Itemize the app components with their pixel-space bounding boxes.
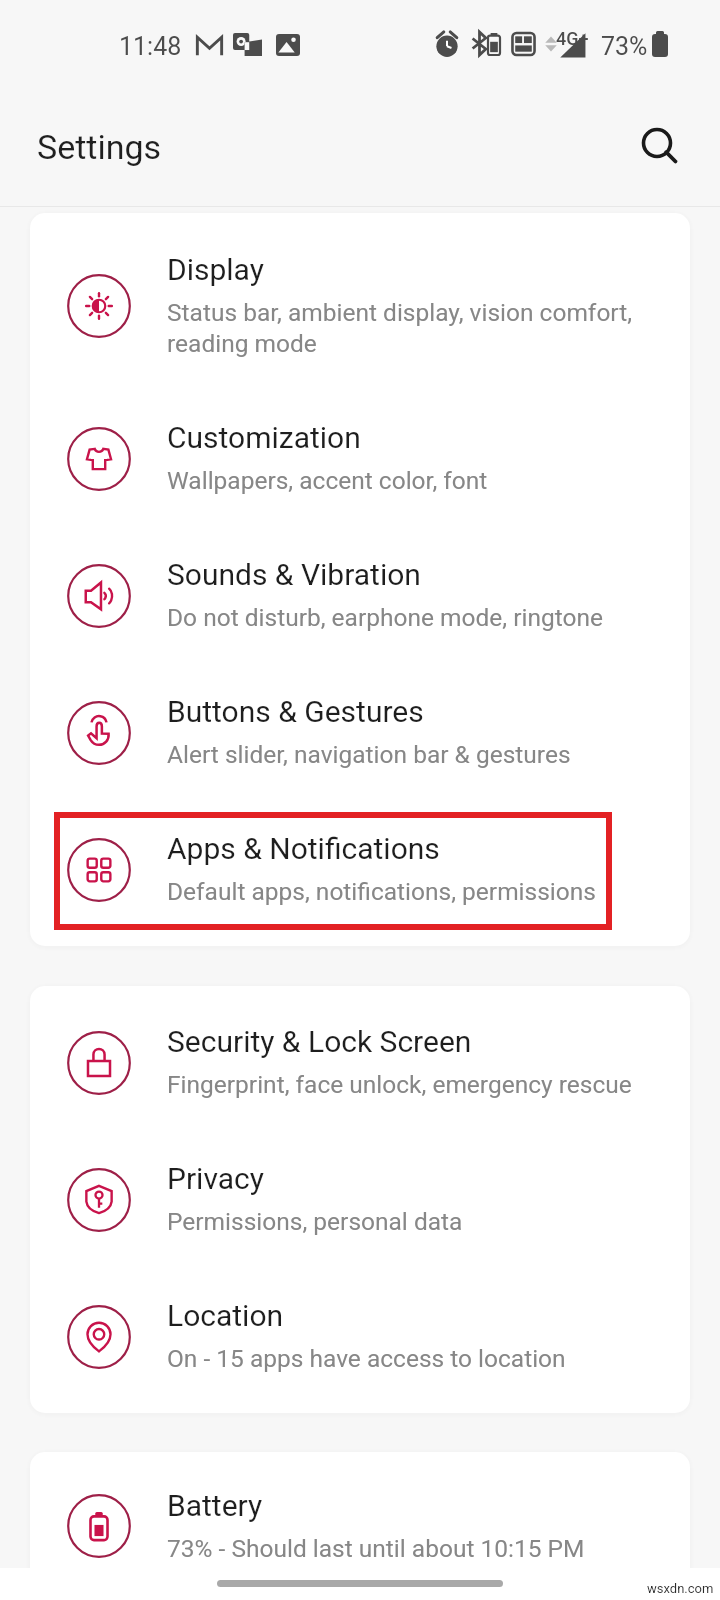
staticText: Customization (167, 420, 361, 455)
staticText: Location (167, 1298, 284, 1333)
staticText: 73% (601, 32, 648, 61)
staticText: Status bar, ambient display, vision comf… (167, 298, 633, 358)
staticText: Privacy (167, 1161, 264, 1196)
button[interactable]: Battery (30, 1460, 690, 1592)
staticText: 11:48 (119, 32, 182, 61)
staticText: Default apps, notifications, permissions (167, 877, 596, 906)
staticText: Permissions, personal data (167, 1207, 463, 1236)
staticText: On - 15 apps have access to location (167, 1344, 566, 1373)
button[interactable]: Apps & Notifications (30, 801, 690, 938)
staticText: Apps & Notifications (167, 831, 440, 866)
button[interactable]: Privacy (30, 1131, 690, 1268)
button[interactable]: Security & Lock Screen (30, 994, 690, 1131)
staticText: Security & Lock Screen (167, 1024, 472, 1059)
staticText: Fingerprint, face unlock, emergency resc… (167, 1070, 632, 1099)
staticText: 73% - Should last until about 10:15 PM (167, 1534, 585, 1563)
staticText: Display (167, 252, 264, 287)
staticText: Settings (37, 127, 162, 167)
staticText: Alert slider, navigation bar & gestures (167, 740, 571, 769)
button[interactable]: Location (30, 1268, 690, 1405)
staticText: wsxdn.com (647, 1581, 714, 1596)
staticText: Sounds & Vibration (167, 557, 421, 592)
button[interactable]: Buttons & Gestures (30, 664, 690, 801)
staticText: Battery (167, 1488, 263, 1523)
staticText: 4G+ (556, 28, 589, 49)
staticText: Do not disturb, earphone mode, ringtone (167, 603, 604, 632)
staticText: Wallpapers, accent color, font (167, 466, 488, 495)
button[interactable]: Search (621, 107, 693, 179)
button[interactable]: Sounds & Vibration (30, 527, 690, 664)
button[interactable]: Display (30, 221, 690, 390)
staticText: Buttons & Gestures (167, 694, 424, 729)
button[interactable]: Customization (30, 390, 690, 527)
